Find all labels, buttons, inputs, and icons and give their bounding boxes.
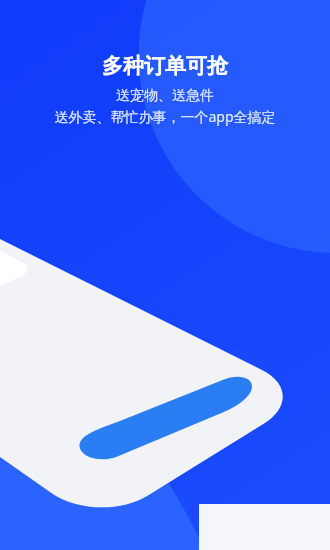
staticText: 送外卖、帮忙办事，一个app全搞定 xyxy=(54,107,276,126)
staticText: 多种订单可抢 xyxy=(102,53,228,79)
staticText: 送宠物、送急件 xyxy=(116,87,214,105)
